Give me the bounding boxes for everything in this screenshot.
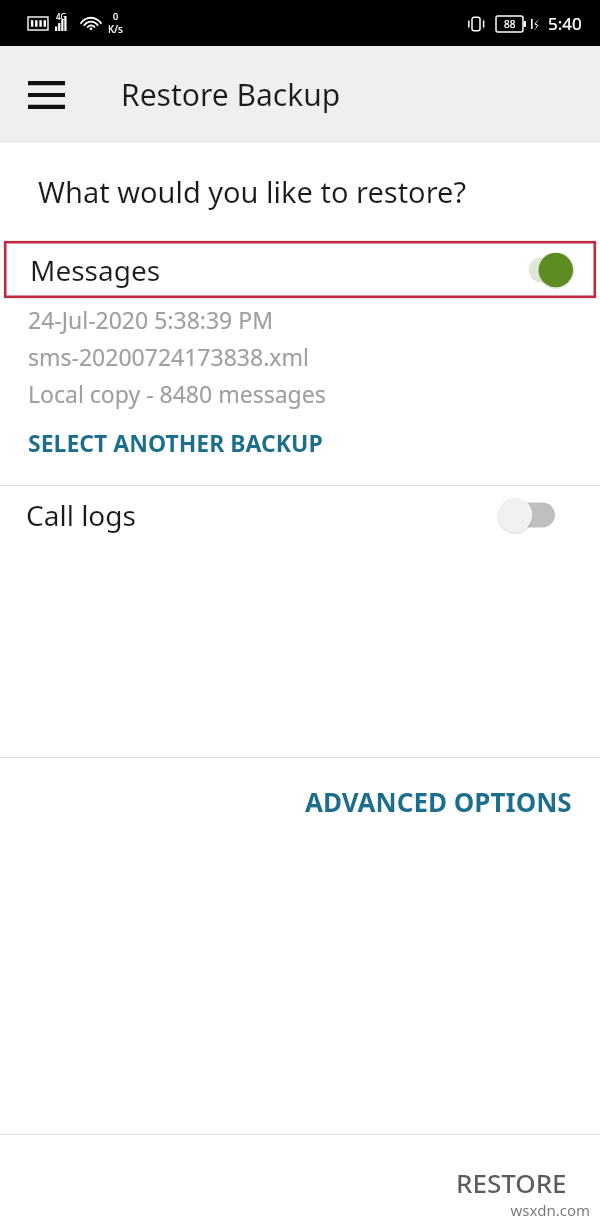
staticText: ADVANCED OPTIONS — [305, 784, 572, 819]
staticText: Restore Backup — [121, 74, 341, 115]
staticText: SELECT ANOTHER BACKUP — [28, 427, 323, 458]
staticText: RESTORE — [456, 1165, 567, 1200]
staticText: 0 — [113, 10, 119, 22]
button[interactable]: Disabled toggle — [497, 495, 555, 535]
button[interactable]: Messages — [4, 241, 596, 298]
staticText: sms-20200724173838.xml — [28, 341, 309, 372]
button[interactable]: SELECT ANOTHER BACKUP — [28, 427, 323, 458]
staticText: K/s — [108, 22, 123, 36]
button[interactable]: Open navigation menu — [18, 67, 74, 123]
staticText: 24-Jul-2020 5:38:39 PM — [28, 304, 274, 335]
staticText: 5:40 — [548, 12, 582, 35]
button[interactable]: Enabled toggle — [516, 250, 574, 290]
staticText: 4G — [56, 11, 67, 22]
button[interactable]: ADVANCED OPTIONS — [305, 784, 572, 819]
staticText: wsxdn.com — [510, 1200, 590, 1220]
button[interactable]: Call logs — [0, 486, 600, 543]
staticText: Messages — [30, 251, 161, 289]
staticText: Call logs — [26, 496, 136, 534]
staticText: 88 — [504, 17, 516, 31]
staticText: What would you like to restore? — [38, 172, 466, 211]
staticText: Local copy - 8480 messages — [28, 378, 326, 409]
button[interactable]: RESTORE — [456, 1165, 567, 1200]
